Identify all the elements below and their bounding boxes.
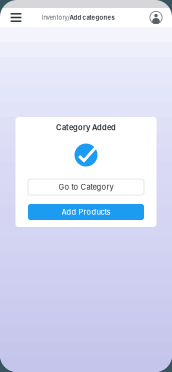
staticText: Add Products [61,207,110,216]
staticText: Go to Category [58,182,113,192]
staticText: Inventory/ [41,14,69,21]
staticText: Add categories [69,14,114,21]
staticText: Category Added [56,123,116,132]
button[interactable]: Add Products [28,204,144,220]
button[interactable]: Account [145,8,167,27]
button[interactable]: Go to Category [28,179,144,195]
button[interactable]: Menu [5,8,27,27]
